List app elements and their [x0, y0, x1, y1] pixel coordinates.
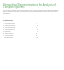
staticText: 6: [37, 28, 38, 30]
staticText: 2 Related work: [3, 24, 16, 26]
staticText: 7 Conclusion: [3, 34, 14, 36]
staticText: 1: [36, 22, 37, 24]
staticText: This survey reviews recent progress in t…: [3, 9, 63, 15]
staticText: 9: [36, 34, 37, 36]
staticText: 6 Discussion: [3, 32, 14, 34]
button[interactable]: 3 Methodology: [3, 26, 37, 28]
button[interactable]: 5 Results: [3, 30, 38, 32]
button[interactable]: 6 Discussion: [3, 32, 37, 34]
staticText: References: [3, 36, 14, 38]
button[interactable]: 7 Conclusion: [3, 34, 37, 36]
staticText: 3 Methodology: [3, 26, 16, 28]
button[interactable]: 4 Experiments: [3, 28, 38, 30]
staticText: Contents: [3, 19, 13, 22]
staticText: 2: [37, 24, 38, 26]
button[interactable]: References: [3, 36, 38, 38]
staticText: Hierarchical Representations for Analysi…: [3, 3, 63, 9]
button[interactable]: 1 Introduction: [3, 22, 37, 24]
staticText: 4 Experiments: [3, 28, 15, 30]
staticText: 10: [36, 36, 38, 38]
button[interactable]: 2 Related work: [3, 24, 38, 26]
staticText: 1 Introduction: [3, 22, 15, 24]
staticText: 5 Results: [3, 30, 11, 32]
staticText: 4: [36, 26, 37, 28]
staticText: 7: [37, 30, 38, 32]
staticText: 8: [36, 32, 37, 34]
